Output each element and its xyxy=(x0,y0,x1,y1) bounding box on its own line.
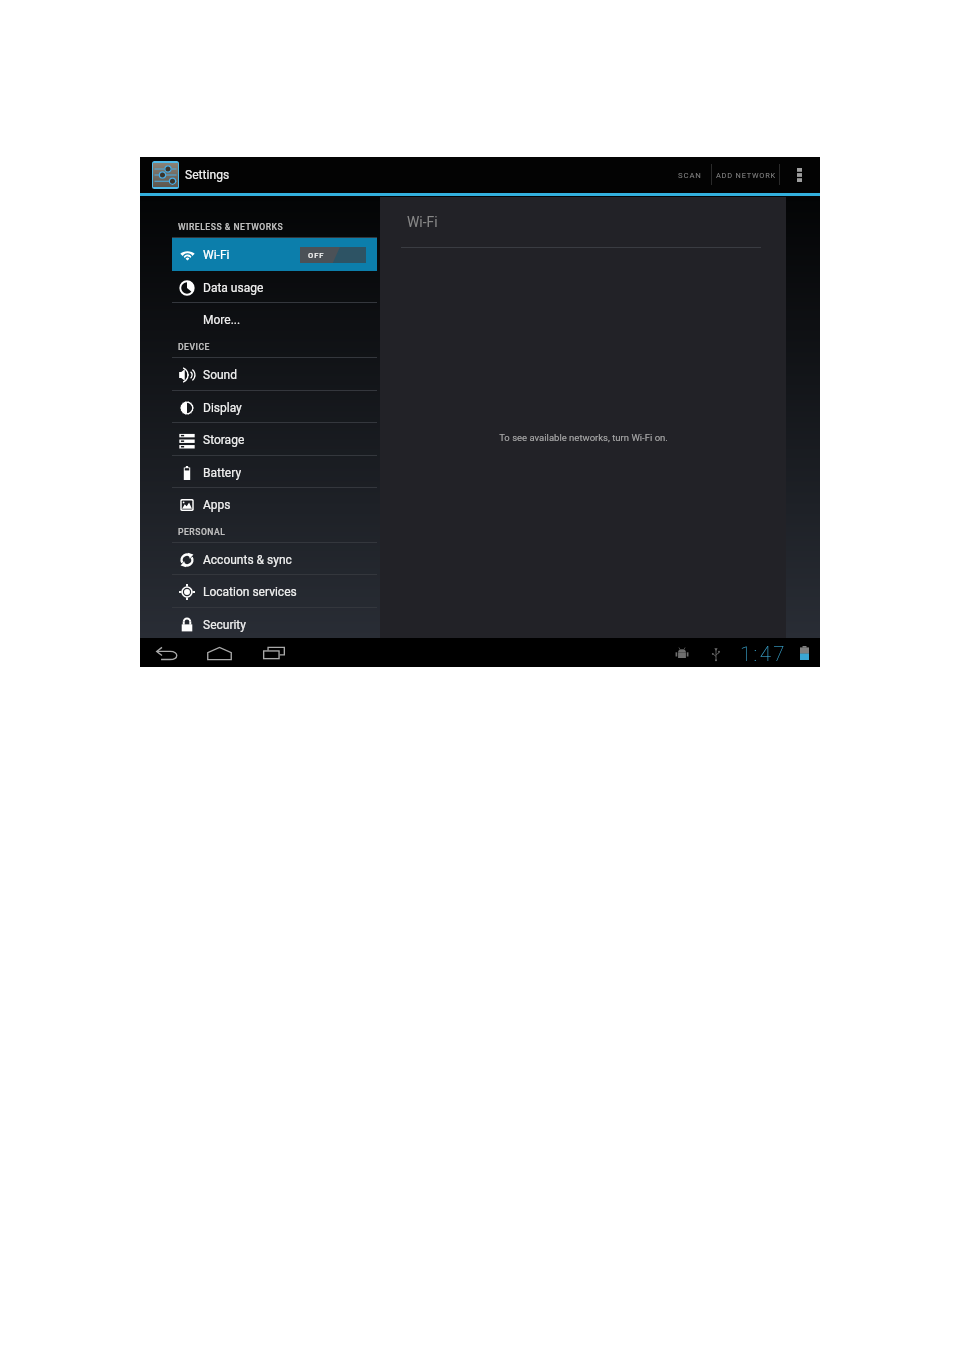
staticText: ADD NETWORK xyxy=(716,171,776,180)
staticText: PERSONAL xyxy=(178,527,226,537)
button[interactable]: Settings xyxy=(140,157,270,193)
staticText: SCAN xyxy=(678,171,702,180)
button[interactable]: Sound xyxy=(140,358,377,391)
staticText: Storage xyxy=(203,433,245,447)
button[interactable]: ADD NETWORK xyxy=(712,157,779,193)
button[interactable]: Security xyxy=(140,608,377,641)
button[interactable]: Home xyxy=(202,641,237,665)
button[interactable]: Data usage xyxy=(140,271,377,304)
staticText: WIRELESS & NETWORKS xyxy=(178,222,284,232)
staticText: Wi-Fi xyxy=(203,248,230,262)
button[interactable]: Location services xyxy=(140,575,377,608)
staticText: Battery xyxy=(203,466,242,480)
staticText: More... xyxy=(203,313,241,327)
button[interactable]: Battery xyxy=(140,456,377,489)
button[interactable]: SCAN xyxy=(668,157,711,193)
button[interactable]: More options xyxy=(780,157,819,193)
staticText: To see available networks, turn Wi-Fi on… xyxy=(499,432,668,443)
button[interactable]: Accounts & sync xyxy=(140,543,377,576)
button[interactable]: Back xyxy=(150,641,185,665)
button[interactable]: Recent apps xyxy=(258,641,290,665)
staticText: Apps xyxy=(203,498,231,512)
staticText: OFF xyxy=(308,251,325,260)
staticText: Data usage xyxy=(203,281,264,295)
staticText: Location services xyxy=(203,585,297,599)
button[interactable]: Storage xyxy=(140,423,377,456)
staticText: Sound xyxy=(203,368,237,382)
staticText: DEVICE xyxy=(178,342,210,352)
staticText: Display xyxy=(203,401,242,415)
button[interactable]: Wi-Fi xyxy=(172,238,377,271)
staticText: Security xyxy=(203,618,246,632)
staticText: Accounts & sync xyxy=(203,553,292,567)
button[interactable]: More... xyxy=(140,303,377,336)
button[interactable]: Display xyxy=(140,391,377,424)
button[interactable]: Apps xyxy=(140,488,377,521)
staticText: Settings xyxy=(185,168,230,182)
staticText: 1:47 xyxy=(740,642,787,666)
staticText: Wi-Fi xyxy=(407,214,438,230)
